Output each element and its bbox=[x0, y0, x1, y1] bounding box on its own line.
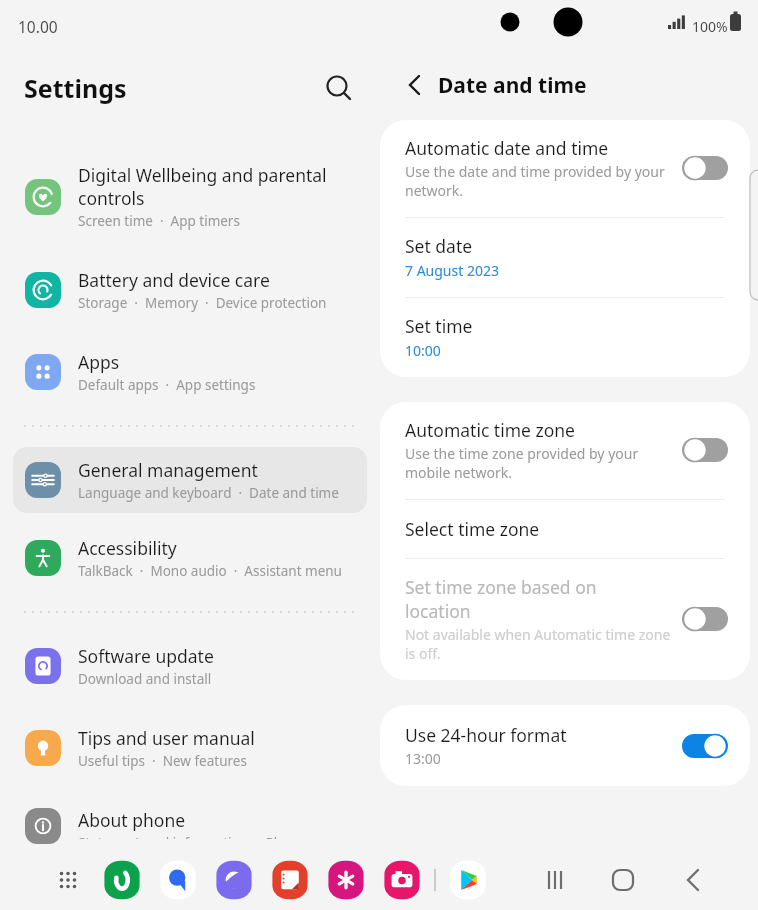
staticText: Battery and device care bbox=[78, 268, 270, 292]
staticText: Digital Wellbeing and parental controls bbox=[78, 163, 327, 210]
staticText: Status · Legal information · Phone name bbox=[78, 834, 346, 839]
button[interactable]: Automatic time zone bbox=[380, 402, 750, 499]
button[interactable]: Select time zone bbox=[380, 500, 750, 558]
staticText: Download and install bbox=[78, 670, 212, 688]
button[interactable]: Recents bbox=[534, 859, 576, 901]
staticText: Accessibility bbox=[78, 536, 177, 560]
staticText: Default apps · App settings bbox=[78, 376, 256, 394]
button[interactable]: Digital Wellbeing and parental controls bbox=[13, 152, 367, 241]
staticText: Automatic date and time bbox=[405, 136, 609, 160]
button[interactable]: Tips and user manual bbox=[13, 715, 367, 781]
button[interactable]: General management bbox=[13, 447, 367, 513]
staticText: Select time zone bbox=[405, 517, 540, 541]
staticText: Software update bbox=[78, 644, 214, 668]
button[interactable]: All apps bbox=[48, 860, 88, 900]
staticText: 10:00 bbox=[405, 341, 441, 360]
button[interactable]: Automatic date and time bbox=[380, 120, 750, 217]
staticText: Screen time · App timers bbox=[78, 212, 240, 230]
button[interactable]: About phone bbox=[13, 797, 367, 850]
button[interactable]: Accessibility bbox=[13, 525, 367, 591]
button[interactable]: Back bbox=[670, 859, 712, 901]
staticText: Use 24-hour format bbox=[405, 723, 567, 747]
staticText: Automatic time zone bbox=[405, 418, 575, 442]
staticText: General management bbox=[78, 458, 258, 482]
button[interactable]: Set date bbox=[380, 218, 750, 297]
staticText: Date and time bbox=[438, 71, 587, 100]
button[interactable]: Battery and device care bbox=[13, 257, 367, 323]
staticText: Use the date and time provided by your n… bbox=[405, 162, 665, 200]
staticText: Apps bbox=[78, 350, 120, 374]
staticText: Use the time zone provided by your mobil… bbox=[405, 444, 639, 482]
button[interactable]: Gallery bbox=[326, 860, 366, 900]
staticText: Tips and user manual bbox=[78, 726, 255, 750]
staticText: Not available when Automatic time zone i… bbox=[405, 625, 671, 663]
staticText: 13:00 bbox=[405, 749, 441, 768]
button[interactable]: Camera bbox=[382, 860, 422, 900]
button[interactable]: Notes bbox=[270, 860, 310, 900]
button[interactable]: Set time bbox=[380, 298, 750, 377]
button[interactable]: Home bbox=[602, 859, 644, 901]
staticText: Set time zone based on location bbox=[405, 575, 597, 623]
button[interactable]: Set time zone based on location bbox=[380, 559, 750, 680]
button[interactable]: Messages bbox=[158, 860, 198, 900]
button[interactable]: Software update bbox=[13, 633, 367, 699]
staticText: About phone bbox=[78, 808, 186, 832]
button[interactable]: Apps bbox=[13, 339, 367, 405]
button[interactable]: Back bbox=[392, 64, 434, 106]
staticText: 100% bbox=[692, 17, 728, 36]
staticText: Settings bbox=[24, 71, 127, 105]
staticText: Set time bbox=[405, 314, 473, 338]
staticText: Language and keyboard · Date and time bbox=[78, 484, 339, 502]
button[interactable]: Use 24-hour format bbox=[380, 705, 750, 786]
button[interactable]: Phone bbox=[102, 860, 142, 900]
button[interactable]: Play Store bbox=[448, 860, 488, 900]
button[interactable]: Internet bbox=[214, 860, 254, 900]
staticText: Set date bbox=[405, 234, 473, 258]
staticText: Storage · Memory · Device protection bbox=[78, 294, 327, 312]
staticText: Useful tips · New features bbox=[78, 752, 247, 770]
staticText: 10.00 bbox=[18, 16, 58, 37]
staticText: TalkBack · Mono audio · Assistant menu bbox=[78, 562, 342, 580]
button[interactable]: Search bbox=[316, 66, 360, 110]
staticText: 7 August 2023 bbox=[405, 261, 499, 280]
